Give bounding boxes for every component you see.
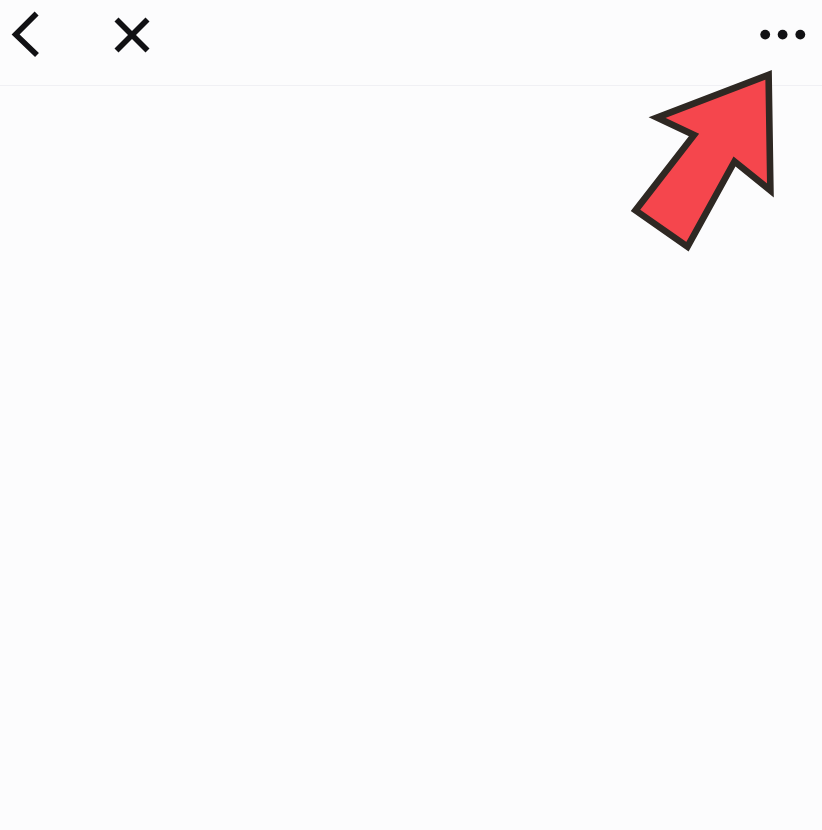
button[interactable]: Back: [0, 0, 70, 70]
button[interactable]: Close: [100, 0, 164, 70]
button[interactable]: More options: [750, 0, 822, 70]
